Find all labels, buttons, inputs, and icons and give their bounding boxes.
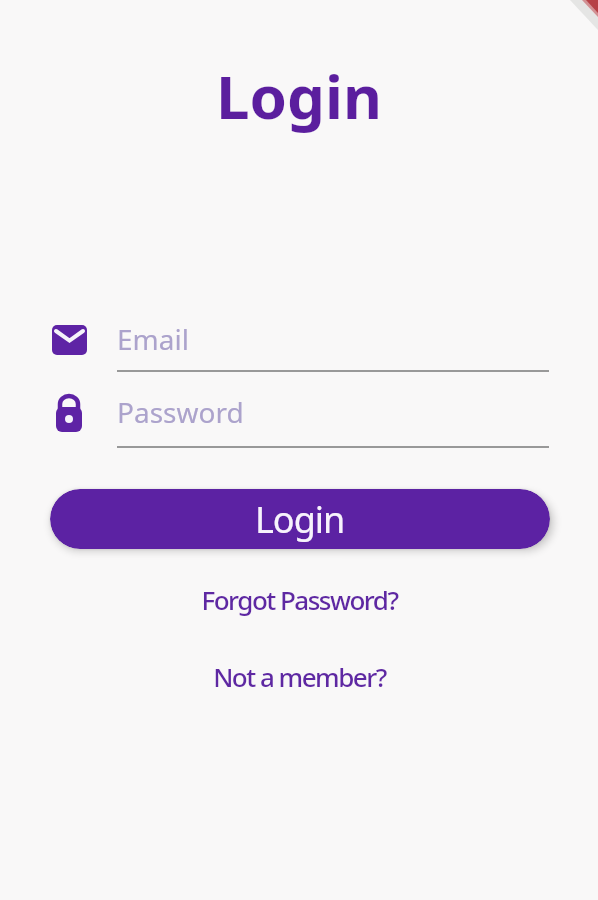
staticText: Login xyxy=(216,55,382,137)
button[interactable]: Forgot Password? xyxy=(201,582,398,617)
staticText: Forgot Password? xyxy=(201,582,398,617)
staticText: Email xyxy=(117,320,189,358)
button[interactable]: Email xyxy=(117,316,549,362)
button[interactable]: Login xyxy=(50,489,550,549)
button[interactable]: Password xyxy=(117,389,549,435)
staticText: Not a member? xyxy=(213,659,386,694)
staticText: Login xyxy=(255,495,345,544)
button[interactable]: Not a member? xyxy=(213,659,386,694)
staticText: Password xyxy=(117,393,244,431)
